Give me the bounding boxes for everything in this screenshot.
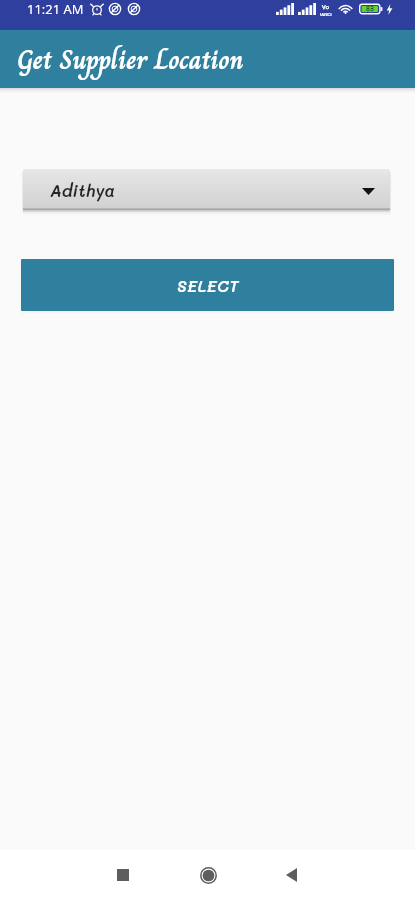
staticText: WiFi [320,11,332,16]
staticText: Get Supplier Location [17,38,244,81]
button[interactable]: Recent apps [86,850,160,900]
staticText: Adithya [50,179,116,201]
staticText: SELECT [177,275,239,296]
button[interactable]: Home [160,850,256,900]
button[interactable]: Adithya [23,169,390,210]
button[interactable]: Back [256,850,330,900]
button[interactable]: SELECT [21,259,394,311]
staticText: 11:21 AM [27,0,84,18]
staticText: 83 [366,4,375,14]
staticText: Vo [322,3,330,11]
